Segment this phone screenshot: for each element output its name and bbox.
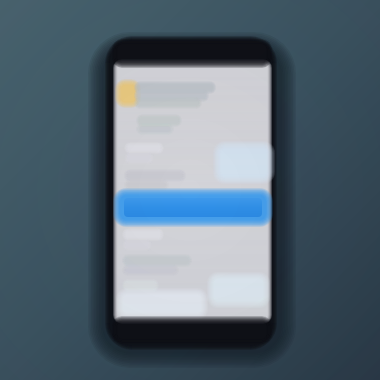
button[interactable]: Header item (122, 84, 214, 108)
button[interactable]: Primary action button (121, 196, 265, 219)
